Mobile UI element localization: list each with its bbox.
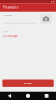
button[interactable]: Back (0, 92, 19, 100)
staticText: dd/mm/aaaa (3, 35, 17, 38)
button[interactable]: dd/mm/aaaa (3, 35, 17, 38)
staticText: SALVAR (23, 82, 32, 85)
staticText: Data (3, 30, 8, 33)
button[interactable]: SALVAR (2, 79, 54, 87)
button[interactable]: Recent apps (37, 92, 56, 100)
staticText: Prescrições (3, 6, 18, 9)
button[interactable]: Tirar foto (40, 14, 52, 24)
button[interactable]: Home (19, 92, 37, 100)
staticText: Paciente (3, 14, 12, 17)
